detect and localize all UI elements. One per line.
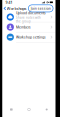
staticText: Members xyxy=(16,25,31,29)
button[interactable]: Profile xyxy=(38,105,55,114)
button[interactable]: Discover xyxy=(20,105,38,114)
staticText: Join session xyxy=(31,6,51,11)
button[interactable]: Members xyxy=(2,22,55,32)
button[interactable]: Home xyxy=(2,105,20,114)
staticText: 9:41 xyxy=(5,0,12,5)
button[interactable]: Upload documents xyxy=(2,12,55,22)
staticText: Upload documents xyxy=(16,11,46,15)
button[interactable]: Workshops xyxy=(2,4,27,13)
staticText: Share notes with the group xyxy=(16,16,41,23)
button[interactable]: Join session xyxy=(28,5,53,12)
button[interactable]: Workshop settings xyxy=(2,32,55,42)
staticText: Workshop settings xyxy=(16,35,46,39)
staticText: Workshops xyxy=(7,6,27,11)
